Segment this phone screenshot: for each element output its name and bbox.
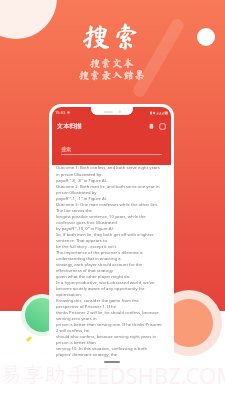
- staticText: 文本扫描: [57, 122, 82, 130]
- staticText: 易享助手: [0, 359, 89, 388]
- staticText: Outcome 1: Both confess, and both serve …: [56, 165, 163, 357]
- staticText: 15:53: [55, 110, 66, 115]
- button[interactable]: Scan: [159, 123, 166, 130]
- button[interactable]: Flash: [148, 123, 155, 130]
- staticText: 搜索: [61, 146, 71, 152]
- staticText: 搜索录入结果: [79, 70, 146, 80]
- staticText: 搜索: [82, 22, 144, 50]
- staticText: 搜索文本: [90, 58, 135, 68]
- staticText: EEDSHBZ.COM: [85, 360, 225, 390]
- button[interactable]: 搜索: [61, 146, 162, 155]
